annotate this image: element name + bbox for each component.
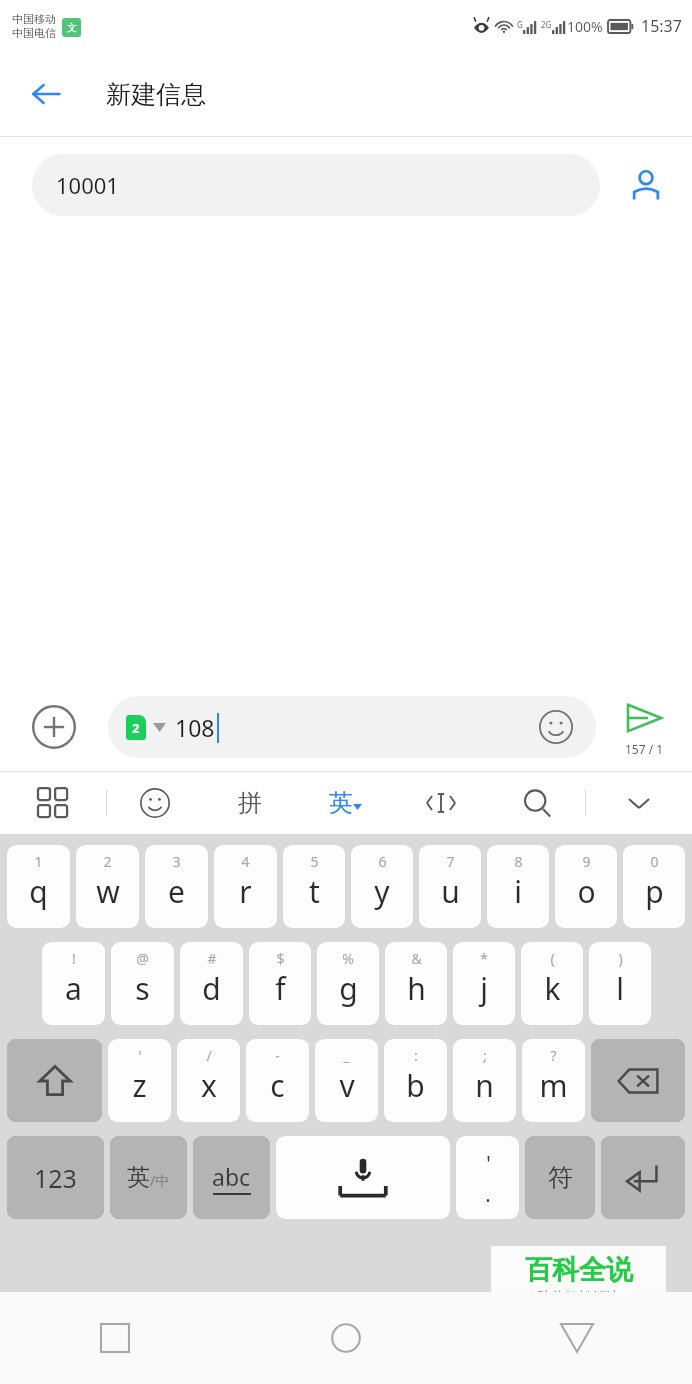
button[interactable]: : <box>384 1039 447 1122</box>
button[interactable]: Contacts <box>600 154 692 216</box>
button[interactable]: ( <box>521 942 583 1025</box>
staticText: ; <box>483 1046 487 1065</box>
staticText: g <box>339 968 358 1009</box>
staticText: s <box>135 968 150 1009</box>
staticText: @ <box>136 949 149 968</box>
staticText: 8 <box>514 852 523 871</box>
staticText: ! <box>72 949 76 968</box>
staticText: _ <box>343 1046 350 1065</box>
button[interactable]: 123 <box>7 1136 104 1219</box>
button[interactable]: Home <box>230 1292 461 1384</box>
staticText: x <box>201 1065 217 1106</box>
staticText: & <box>411 949 422 968</box>
staticText: f <box>275 968 286 1009</box>
button[interactable]: Add attachment <box>0 683 108 771</box>
staticText: 0 <box>650 852 659 871</box>
button[interactable]: 8 <box>487 845 549 928</box>
button[interactable]: ; <box>453 1039 516 1122</box>
button[interactable]: ) <box>589 942 651 1025</box>
button[interactable]: $ <box>249 942 311 1025</box>
button[interactable]: Apps <box>0 772 106 834</box>
staticText: t <box>309 871 320 912</box>
button[interactable]: * <box>453 942 515 1025</box>
button[interactable]: 拼 <box>202 772 297 834</box>
button[interactable]: Back <box>22 70 70 118</box>
staticText: # <box>207 949 217 968</box>
button[interactable]: ' <box>108 1039 171 1122</box>
staticText: 英 <box>127 1163 150 1192</box>
button[interactable]: Emoji <box>107 772 202 834</box>
button[interactable]: @ <box>111 942 174 1025</box>
button[interactable]: 0 <box>623 845 685 928</box>
button[interactable]: 6 <box>351 845 413 928</box>
button[interactable]: Enter <box>601 1136 685 1219</box>
button[interactable]: 5 <box>283 845 345 928</box>
staticText: y <box>374 871 390 912</box>
button[interactable]: Send <box>596 683 692 771</box>
staticText: j <box>480 968 488 1009</box>
staticText: p <box>645 871 664 912</box>
staticText: r <box>239 871 252 912</box>
staticText: 157 / 1 <box>625 741 664 757</box>
button[interactable]: 1 <box>7 845 70 928</box>
staticText: 百科全说 <box>525 1253 633 1287</box>
button[interactable]: abc <box>193 1136 270 1219</box>
staticText: a <box>65 968 82 1009</box>
staticText: G <box>517 19 523 30</box>
staticText: 5 <box>310 852 319 871</box>
staticText: 助你轻松解决 <box>537 1289 621 1307</box>
button[interactable]: Cursor <box>393 772 489 834</box>
staticText: k <box>544 968 561 1009</box>
button[interactable]: Backspace <box>591 1039 685 1122</box>
staticText: . <box>485 1178 491 1208</box>
staticText: 3 <box>172 852 181 871</box>
button[interactable]: ! <box>42 942 105 1025</box>
button[interactable]: Recent apps <box>0 1292 230 1384</box>
button[interactable]: / <box>177 1039 240 1122</box>
button[interactable]: 2 <box>76 845 139 928</box>
button[interactable]: 9 <box>555 845 617 928</box>
staticText: 中国电信 <box>12 26 56 40</box>
staticText: ( <box>550 949 555 968</box>
button[interactable]: 2 <box>108 696 596 758</box>
staticText: ' <box>138 1046 142 1065</box>
staticText: u <box>441 871 460 912</box>
button[interactable]: ? <box>522 1039 585 1122</box>
button[interactable]: Hide keyboard <box>586 772 692 834</box>
staticText: z <box>132 1065 147 1106</box>
button[interactable]: Shift <box>7 1039 102 1122</box>
button[interactable]: 3 <box>145 845 208 928</box>
staticText: 符 <box>548 1162 573 1193</box>
staticText: ' <box>486 1148 491 1178</box>
staticText: - <box>275 1046 280 1065</box>
staticText: : <box>414 1046 418 1065</box>
button[interactable]: & <box>385 942 447 1025</box>
button[interactable]: 10001 <box>32 154 600 216</box>
button[interactable]: 英 <box>297 772 393 834</box>
staticText: 7 <box>446 852 455 871</box>
button[interactable]: 7 <box>419 845 481 928</box>
staticText: % <box>342 949 354 968</box>
button[interactable]: - <box>246 1039 309 1122</box>
button[interactable]: # <box>180 942 243 1025</box>
button[interactable]: 4 <box>214 845 277 928</box>
button[interactable]: 符 <box>525 1136 595 1219</box>
staticText: ) <box>618 949 623 968</box>
button[interactable]: Space <box>276 1136 450 1219</box>
button[interactable]: 英 <box>110 1136 187 1219</box>
staticText: 123 <box>34 1161 77 1195</box>
staticText: b <box>406 1065 425 1106</box>
staticText: w <box>96 871 120 912</box>
staticText: 2G <box>541 19 552 30</box>
staticText: 9 <box>582 852 591 871</box>
staticText: 2 <box>103 852 112 871</box>
button[interactable]: ' <box>456 1136 519 1219</box>
staticText: q <box>29 871 48 912</box>
button[interactable]: Back <box>461 1292 692 1384</box>
staticText: 4 <box>241 852 250 871</box>
button[interactable]: % <box>317 942 379 1025</box>
staticText: 英 <box>329 788 353 818</box>
button[interactable]: Emoji <box>536 707 576 747</box>
button[interactable]: _ <box>315 1039 378 1122</box>
button[interactable]: Search <box>489 772 585 834</box>
